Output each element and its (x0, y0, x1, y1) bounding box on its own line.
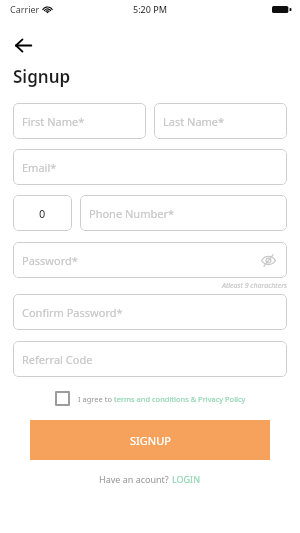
staticText: 0 (39, 206, 46, 221)
staticText: LOGIN (172, 473, 201, 485)
staticText: Signup (13, 65, 71, 88)
staticText: Phone Number* (89, 206, 174, 221)
button[interactable]: Phone Number* (80, 195, 287, 231)
staticText: Carrier (10, 3, 40, 15)
button[interactable]: Agree to terms (55, 391, 70, 406)
staticText: Atleast 9 charachters (13, 281, 287, 291)
staticText: Confirm Password* (22, 305, 123, 320)
button[interactable]: Email* (13, 149, 287, 185)
button[interactable]: First Name* (13, 103, 146, 139)
button[interactable]: Confirm Password* (13, 294, 287, 330)
button[interactable]: Referral Code (13, 341, 287, 377)
button[interactable]: terms and conditions & Privacy Policy (114, 394, 246, 404)
staticText: 5:20 PM (133, 3, 167, 15)
button[interactable]: Back (8, 30, 38, 60)
button[interactable]: Show password (258, 250, 278, 270)
staticText: First Name* (22, 114, 85, 129)
button[interactable]: 0 (13, 195, 72, 231)
staticText: Email* (22, 160, 57, 175)
staticText: terms and conditions & Privacy Policy (114, 394, 246, 404)
button[interactable]: Password* (13, 242, 287, 278)
staticText: Have an acount? (99, 473, 172, 485)
button[interactable]: LOGIN (172, 473, 201, 485)
staticText: Last Name* (163, 114, 225, 129)
staticText: Password* (22, 253, 78, 268)
button[interactable]: SIGNUP (30, 420, 270, 460)
staticText: Referral Code (22, 352, 93, 367)
button[interactable]: Last Name* (154, 103, 287, 139)
staticText: SIGNUP (130, 433, 171, 448)
staticText: I agree to (78, 394, 114, 404)
